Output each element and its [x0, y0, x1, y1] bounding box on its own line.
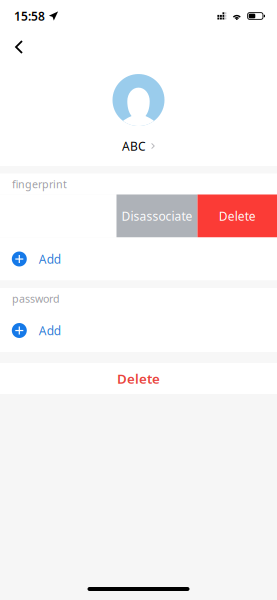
staticText: Disassociate: [121, 208, 192, 224]
button[interactable]: Back: [3, 32, 35, 62]
staticText: fingerprint: [12, 177, 67, 191]
staticText: password: [12, 291, 60, 306]
staticText: Add: [39, 251, 61, 267]
button[interactable]: Add: [0, 237, 277, 280]
staticText: Add: [39, 322, 61, 338]
button[interactable]: ABC: [0, 62, 277, 166]
button[interactable]: Add: [0, 309, 277, 352]
staticText: 15:58: [14, 8, 45, 24]
button[interactable]: Delete: [197, 194, 277, 237]
staticText: ABC: [122, 138, 146, 154]
button[interactable]: Delete: [0, 363, 277, 394]
button[interactable]: Disassociate: [116, 194, 197, 237]
staticText: Delete: [219, 208, 256, 224]
staticText: Delete: [117, 370, 160, 387]
